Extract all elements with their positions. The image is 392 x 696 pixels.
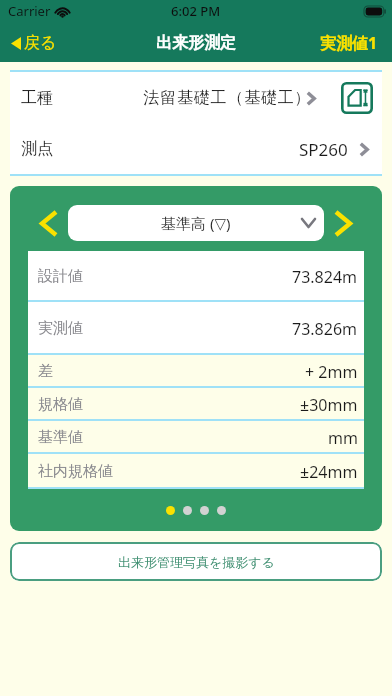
staticText: 実測値1 — [320, 32, 378, 54]
button[interactable]: 戻る — [11, 24, 57, 62]
staticText: 差 — [38, 362, 53, 381]
staticText: ±24mm — [300, 461, 358, 483]
button[interactable]: Previous item — [42, 210, 56, 236]
staticText: 基準値 — [38, 428, 83, 447]
staticText: 6:02 PM — [171, 2, 221, 20]
button[interactable]: Next item — [336, 210, 350, 236]
staticText: 出来形管理写真を撮影する — [118, 554, 275, 570]
staticText: 設計値 — [38, 267, 83, 286]
staticText: 測点 — [21, 139, 53, 159]
staticText: SP260 — [299, 138, 348, 161]
staticText: 73.824m — [292, 266, 358, 288]
staticText: 実測値 — [38, 319, 83, 338]
staticText: ±30mm — [300, 394, 358, 416]
staticText: + 2mm — [305, 361, 358, 383]
button[interactable]: 基準高 (▽) — [68, 205, 324, 241]
button[interactable]: 実測値1 — [320, 24, 378, 62]
button[interactable]: 出来形管理写真を撮影する — [10, 542, 382, 581]
staticText: mm — [328, 427, 358, 449]
staticText: 出来形測定 — [156, 33, 236, 53]
staticText: 基準高 (▽) — [161, 213, 231, 233]
button[interactable]: 測点 — [10, 124, 382, 174]
staticText: 戻る — [24, 33, 57, 53]
staticText: Carrier — [8, 2, 51, 20]
staticText: 規格値 — [38, 395, 83, 414]
button[interactable]: Measurement shape — [341, 82, 373, 114]
staticText: 73.826m — [292, 318, 358, 340]
button[interactable]: 工種 — [10, 72, 382, 124]
staticText: 工種 — [21, 88, 53, 108]
staticText: 社内規格値 — [38, 462, 113, 481]
staticText: 法留基礎工（基礎工） — [143, 88, 311, 108]
